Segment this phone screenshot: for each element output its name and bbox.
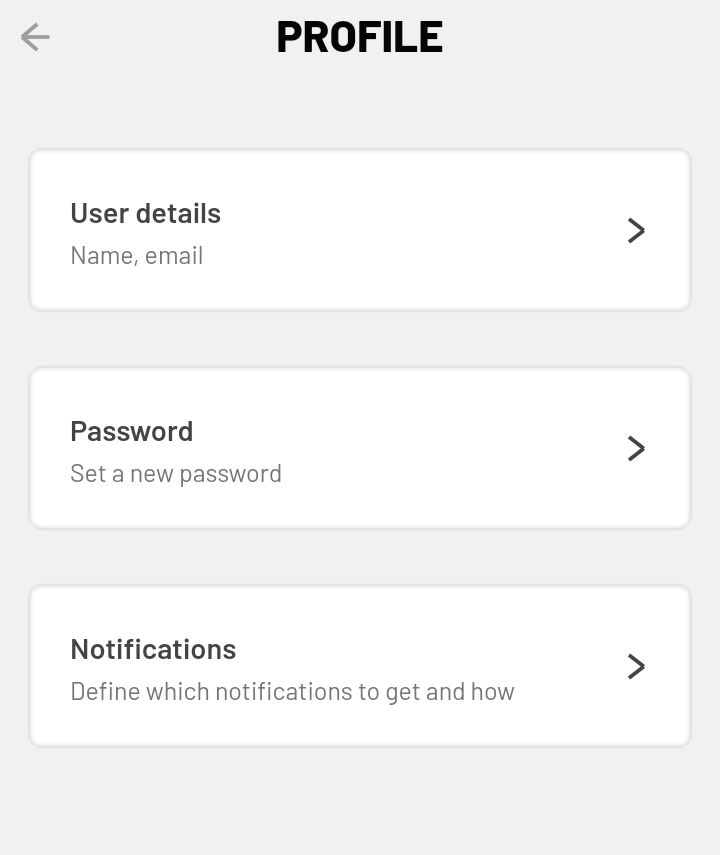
staticText: Name, email — [70, 239, 204, 269]
staticText: PROFILE — [276, 8, 444, 61]
button[interactable]: Notifications — [30, 586, 690, 746]
staticText: User details — [70, 194, 222, 229]
staticText: Set a new password — [70, 457, 283, 487]
button[interactable]: Back — [8, 10, 62, 64]
staticText: Define which notifications to get and ho… — [70, 675, 516, 705]
button[interactable]: Password — [30, 368, 690, 528]
button[interactable]: User details — [30, 150, 690, 310]
staticText: Notifications — [70, 630, 237, 665]
staticText: Password — [70, 412, 194, 447]
